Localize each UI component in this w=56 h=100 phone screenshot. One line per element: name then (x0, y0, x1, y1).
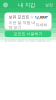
staticText: 설정 (45, 2, 53, 7)
staticText: 12,480P (34, 14, 47, 20)
staticText: 자세히 (35, 22, 47, 27)
button[interactable]: 설정 (45, 2, 53, 7)
staticText: 보유 포인트 (8, 14, 29, 19)
staticText: 포인트 사용하기 (13, 31, 42, 36)
button[interactable]: Profile (3, 2, 8, 7)
staticText: 포인트는 결제 시 자동 적용됩니다 (5, 39, 51, 42)
staticText: 이번 달 적립 내역 보기 (8, 20, 35, 30)
button[interactable]: 포인트 사용하기 (5, 31, 51, 37)
staticText: 내 지갑 (18, 2, 35, 8)
